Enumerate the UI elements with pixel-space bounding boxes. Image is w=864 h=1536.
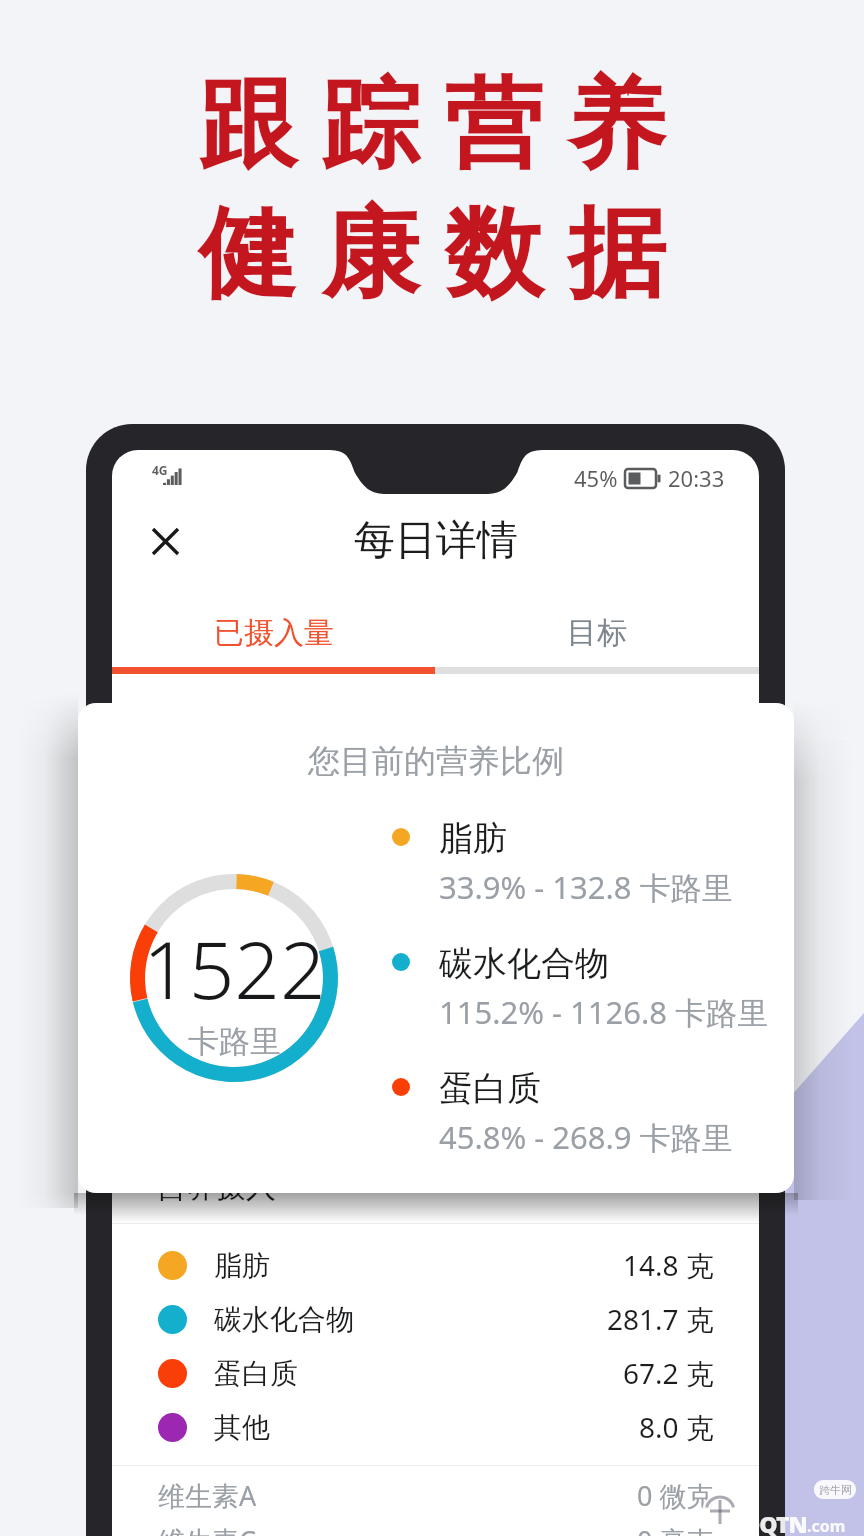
staticText: 已摄入量 xyxy=(214,614,334,652)
button[interactable]: 蛋白质 xyxy=(112,1346,759,1400)
staticText: 卡路里 xyxy=(188,1022,281,1061)
staticText: 1522 xyxy=(143,913,326,1022)
staticText: 4G xyxy=(152,462,168,478)
staticText: 脂肪 xyxy=(214,1248,270,1283)
staticText: 每日详情 xyxy=(354,515,518,567)
staticText: 0 毫克 xyxy=(637,1522,714,1536)
button[interactable]: 脂肪 xyxy=(112,1238,759,1292)
staticText: 碳水化合物 xyxy=(439,942,609,985)
staticText: 45.8% - 268.9 卡路里 xyxy=(439,1116,733,1158)
staticText: 281.7 克 xyxy=(607,1300,714,1338)
staticText: 115.2% - 1126.8 卡路里 xyxy=(439,991,769,1033)
staticText: 33.9% - 132.8 卡路里 xyxy=(439,866,733,908)
staticText: 健康数据 xyxy=(186,193,678,316)
staticText: 蛋白质 xyxy=(214,1356,298,1391)
staticText: 45% xyxy=(574,463,618,493)
staticText: 跟踪营养 xyxy=(186,64,678,187)
staticText: 0 微克 xyxy=(637,1477,714,1514)
staticText: 20:33 xyxy=(668,463,725,493)
staticText: 目标 xyxy=(567,614,627,652)
button[interactable]: Close xyxy=(135,511,195,571)
staticText: .com xyxy=(807,1515,846,1536)
button[interactable]: 碳水化合物 xyxy=(112,1292,759,1346)
staticText: 您目前的营养比例 xyxy=(308,741,564,781)
staticText: 营养摄入 xyxy=(156,1168,276,1206)
staticText: QQTN xyxy=(742,1508,807,1536)
button[interactable]: 维生素C xyxy=(112,1522,759,1536)
button[interactable]: 已摄入量 xyxy=(112,586,435,667)
staticText: 跨牛网 xyxy=(819,1483,852,1497)
button[interactable]: 目标 xyxy=(435,586,759,667)
staticText: 脂肪 xyxy=(439,817,507,860)
staticText: 其他 xyxy=(214,1410,270,1445)
staticText: 碳水化合物 xyxy=(214,1302,354,1337)
button[interactable]: 维生素A xyxy=(112,1468,759,1522)
staticText: 维生素A xyxy=(158,1477,257,1514)
staticText: 67.2 克 xyxy=(623,1354,714,1392)
staticText: 维生素C xyxy=(158,1522,257,1536)
staticText: 8.0 克 xyxy=(639,1408,714,1446)
staticText: 蛋白质 xyxy=(439,1067,541,1110)
button[interactable]: 其他 xyxy=(112,1400,759,1454)
staticText: 14.8 克 xyxy=(623,1246,714,1284)
